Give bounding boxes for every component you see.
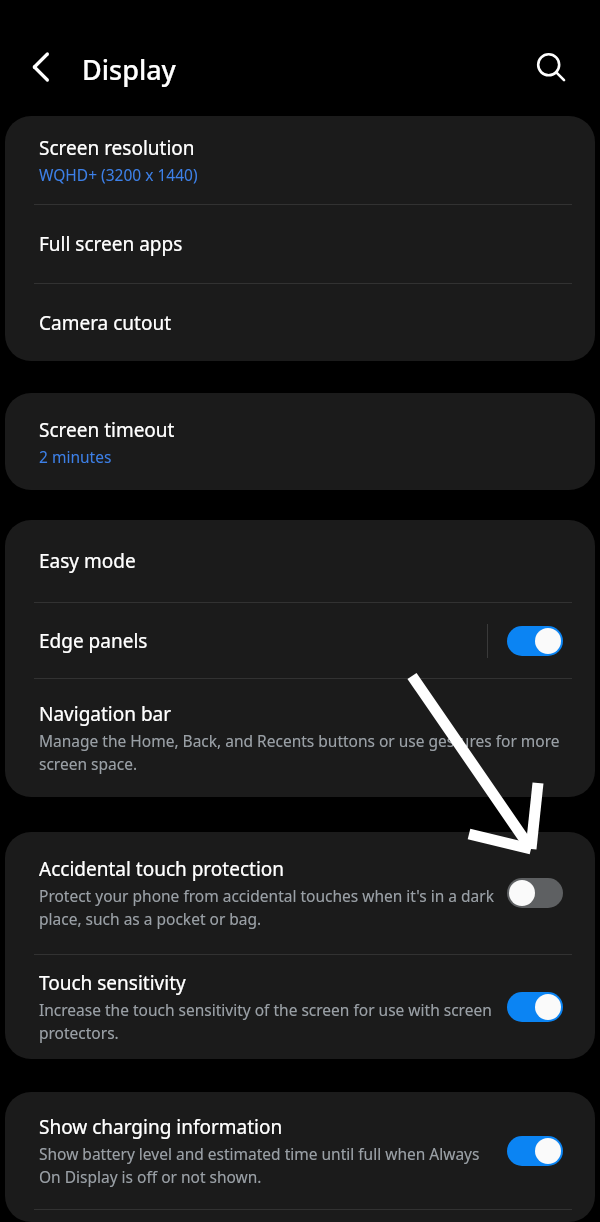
staticText: Show battery level and estimated time un… (39, 1143, 497, 1188)
staticText: Camera cutout (39, 310, 172, 336)
staticText: 2 minutes (39, 446, 112, 467)
staticText: Increase the touch sensitivity of the sc… (39, 999, 497, 1044)
staticText: Show charging information (39, 1114, 283, 1140)
button[interactable]: Show charging information (5, 1092, 595, 1209)
staticText: Accidental touch protection (39, 856, 285, 882)
button[interactable]: Touch sensitivity (5, 955, 595, 1059)
staticText: Screen resolution (39, 135, 195, 161)
staticText: Screen timeout (39, 417, 175, 443)
staticText: Full screen apps (39, 231, 183, 257)
button[interactable]: Show charging information (507, 1136, 563, 1166)
button[interactable]: Touch sensitivity (507, 992, 563, 1022)
staticText: Manage the Home, Back, and Recents butto… (39, 730, 571, 775)
staticText: Touch sensitivity (39, 970, 186, 996)
button[interactable]: Easy mode (5, 520, 595, 602)
staticText: Edge panels (39, 628, 148, 654)
button[interactable]: Edge panels (5, 603, 595, 678)
button[interactable]: Edge panels (507, 626, 563, 656)
button[interactable]: Screen timeout (5, 393, 595, 490)
staticText: Navigation bar (39, 701, 172, 727)
button[interactable]: Screen resolution (5, 116, 595, 204)
button[interactable]: Full screen apps (5, 205, 595, 283)
button[interactable]: Accidental touch protection (5, 832, 595, 954)
staticText: WQHD+ (3200 x 1440) (39, 164, 198, 185)
staticText: Protect your phone from accidental touch… (39, 885, 497, 930)
button[interactable]: Camera cutout (5, 284, 595, 361)
button[interactable]: Accidental touch protection (507, 878, 563, 908)
button[interactable]: Navigation bar (5, 679, 595, 797)
button[interactable]: Search (528, 45, 572, 89)
staticText: Display (82, 51, 176, 88)
staticText: Easy mode (39, 548, 136, 574)
button[interactable]: Back (21, 45, 65, 89)
